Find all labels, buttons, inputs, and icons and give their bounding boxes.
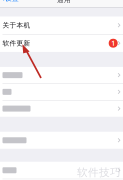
button[interactable] <box>0 162 123 179</box>
staticText: 软件技巧 <box>77 166 121 179</box>
button[interactable]: 设置 <box>0 0 19 3</box>
staticText: 软件更新 <box>2 39 30 47</box>
staticText: 关于本机 <box>2 21 30 29</box>
button[interactable]: 关于本机 <box>0 16 123 34</box>
staticText: 1 <box>111 39 115 48</box>
button[interactable] <box>0 84 123 100</box>
button[interactable] <box>0 100 123 117</box>
staticText: 通用 <box>57 0 71 4</box>
button[interactable] <box>0 67 123 83</box>
button[interactable]: 软件更新 <box>0 34 123 52</box>
staticText: 设置 <box>5 0 19 3</box>
button[interactable] <box>0 132 123 149</box>
